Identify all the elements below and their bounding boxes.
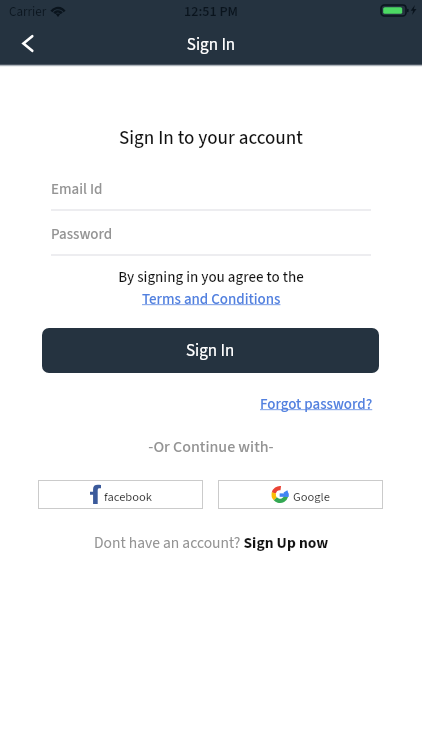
button[interactable]: Forgot password?: [260, 394, 373, 415]
staticText: Password: [51, 224, 113, 245]
button[interactable]: Terms and Conditions: [142, 289, 281, 310]
staticText: 12:51 PM: [0, 2, 422, 22]
button[interactable]: facebook: [38, 480, 203, 509]
staticText: Sign In: [186, 339, 235, 363]
button[interactable]: Dont have an account? Sign Up now: [94, 532, 329, 554]
staticText: Google: [293, 488, 330, 506]
staticText: -Or Continue with-: [0, 436, 422, 459]
button[interactable]: Sign In: [42, 328, 379, 373]
staticText: Carrier: [9, 3, 47, 22]
staticText: Email Id: [51, 179, 103, 200]
staticText: Sign In: [0, 33, 422, 57]
button[interactable]: Google: [218, 480, 383, 509]
staticText: facebook: [104, 488, 152, 506]
staticText: By signing in you agree to the: [0, 267, 422, 288]
button[interactable]: Back: [9, 25, 45, 61]
staticText: Sign In to your account: [0, 125, 422, 152]
